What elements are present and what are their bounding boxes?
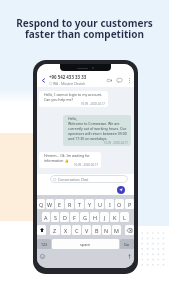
staticText: D: [63, 214, 67, 221]
staticText: Hello, I cannot login to my account.: [44, 92, 103, 97]
staticText: K: [113, 214, 117, 221]
button[interactable]: V: [82, 225, 91, 235]
button[interactable]: Emoji: [38, 252, 46, 260]
button[interactable]: I: [105, 199, 114, 209]
button[interactable]: Delete: [125, 225, 134, 235]
staticText: Hmmm... Ok. Im waiting for: [44, 153, 90, 158]
button[interactable]: 123: [37, 239, 51, 249]
staticText: E: [58, 201, 61, 208]
button[interactable]: Video call: [106, 77, 113, 84]
staticText: N: [104, 227, 109, 234]
button[interactable]: U: [95, 199, 104, 209]
button[interactable]: Go: [120, 239, 134, 249]
button[interactable]: L: [120, 212, 129, 222]
staticText: C: [75, 227, 79, 234]
button[interactable]: J: [100, 212, 109, 222]
button[interactable]: More options: [126, 77, 132, 83]
staticText: +90 542 433 33 33: [49, 74, 87, 80]
staticText: M: [114, 227, 119, 234]
staticText: S: [54, 214, 57, 221]
button[interactable]: D: [60, 212, 69, 222]
button[interactable]: S: [51, 212, 59, 222]
button[interactable]: Q: [37, 199, 45, 209]
staticText: H: [93, 214, 97, 221]
staticText: 10:09 - 2020.04.17: [81, 102, 105, 106]
staticText: and 17:30 on weekdays.: [68, 136, 108, 141]
button[interactable]: T: [75, 199, 84, 209]
staticText: B: [95, 227, 99, 234]
staticText: L: [123, 214, 126, 221]
staticText: J: [104, 214, 106, 221]
button[interactable]: M: [112, 225, 121, 235]
button[interactable]: E: [55, 199, 64, 209]
button[interactable]: Send: [117, 186, 125, 194]
staticText: V: [85, 227, 89, 234]
button[interactable]: B: [92, 225, 101, 235]
staticText: WA - Müşteri Destek: [53, 81, 86, 86]
button[interactable]: X: [61, 225, 71, 235]
button[interactable]: O: [115, 199, 124, 209]
staticText: U: [98, 201, 102, 208]
staticText: Respond to your customers faster than co…: [0, 16, 169, 41]
staticText: I: [109, 201, 111, 208]
button[interactable]: Back: [39, 76, 47, 84]
button[interactable]: Z: [50, 225, 60, 235]
staticText: 123: [41, 242, 48, 247]
staticText: Hello,: [68, 116, 78, 121]
staticText: information 👍: [44, 158, 69, 163]
staticText: Conversation Chat: [58, 177, 89, 182]
staticText: 10:09 - 2020.04.17: [104, 141, 128, 145]
staticText: currently out of working hours. Our: [68, 126, 127, 131]
staticText: R: [68, 201, 72, 208]
button[interactable]: Microphone: [125, 252, 133, 260]
staticText: Can you help me?: [44, 97, 74, 102]
button[interactable]: Messages: [116, 77, 123, 84]
button[interactable]: P: [125, 199, 134, 209]
button[interactable]: H: [90, 212, 99, 222]
staticText: Go: [124, 242, 130, 247]
staticText: P: [128, 201, 132, 208]
staticText: Welcome to Comwease. We are: [68, 121, 120, 126]
button[interactable]: K: [110, 212, 119, 222]
button[interactable]: Conversation Chat: [50, 175, 128, 183]
button[interactable]: F: [70, 212, 79, 222]
staticText: W: [47, 201, 53, 208]
staticText: Y: [88, 201, 92, 208]
button[interactable]: A: [42, 212, 50, 222]
button[interactable]: N: [102, 225, 111, 235]
button[interactable]: R: [65, 199, 74, 209]
staticText: O: [117, 201, 122, 208]
staticText: 10:09 - 2020.04.17: [74, 163, 98, 167]
button[interactable]: Shift: [37, 225, 46, 235]
button[interactable]: W: [46, 199, 54, 209]
staticText: T: [78, 201, 81, 208]
button[interactable]: Y: [85, 199, 94, 209]
button[interactable]: G: [80, 212, 89, 222]
button[interactable]: space: [52, 239, 119, 249]
staticText: Q: [39, 201, 44, 208]
staticText: operators will return between 09:00: [68, 131, 127, 136]
staticText: F: [73, 214, 76, 221]
staticText: X: [64, 227, 68, 234]
staticText: space: [80, 242, 91, 247]
staticText: G: [83, 214, 87, 221]
button[interactable]: C: [72, 225, 81, 235]
staticText: Z: [53, 227, 57, 234]
staticText: A: [44, 214, 48, 221]
